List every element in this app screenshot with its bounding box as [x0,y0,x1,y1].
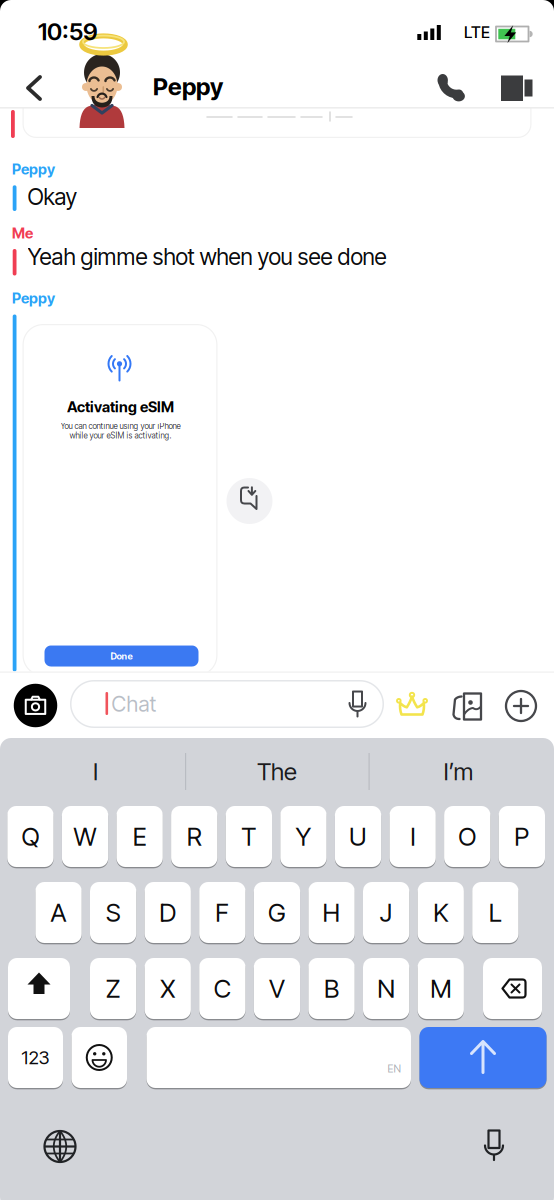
staticText: EN [387,1062,401,1075]
button[interactable]: Q [7,806,54,867]
staticText: Yeah gimme shot when you see done [27,243,386,270]
staticText: Okay [27,183,77,210]
button[interactable]: Video call [495,66,539,110]
staticText: Q [21,822,39,851]
staticText: V [269,974,285,1003]
button[interactable]: I [389,806,436,867]
staticText: G [268,898,286,927]
button[interactable]: M [418,958,464,1019]
staticText: M [430,974,451,1003]
button[interactable]: Shift [8,958,70,1019]
button[interactable]: I’m [378,749,538,793]
staticText: 10:59 [38,17,98,46]
button[interactable]: T [226,806,272,867]
button[interactable]: Send [419,1027,546,1088]
staticText: D [159,898,176,927]
staticText: X [160,974,175,1003]
button[interactable]: Chat [70,680,384,728]
staticText: The [257,757,297,786]
button[interactable]: E [116,806,163,867]
button[interactable]: K [418,882,464,943]
button[interactable]: Z [90,958,136,1019]
button[interactable]: U [335,806,381,867]
button[interactable]: W [62,806,108,867]
button[interactable]: Stickers [448,686,488,726]
button[interactable]: F [199,882,245,943]
staticText: A [50,898,66,927]
button[interactable]: Back [14,66,54,110]
button[interactable]: S [90,882,136,943]
button[interactable]: Space [146,1027,411,1088]
staticText: B [324,974,339,1003]
staticText: while your eSIM is activating. [69,431,171,440]
button[interactable]: C [199,958,245,1019]
button[interactable]: Y [280,806,327,867]
button[interactable]: R [171,806,217,867]
staticText: Activating eSIM [67,398,174,416]
button[interactable]: V [254,958,300,1019]
button[interactable]: O [444,806,490,867]
button[interactable]: Done [44,645,198,666]
staticText: F [215,898,229,927]
button[interactable]: Next keyboard [41,1127,79,1165]
button[interactable]: 123 [8,1027,63,1088]
staticText: O [458,822,476,851]
staticText: K [433,898,448,927]
button[interactable]: P [499,806,545,867]
button[interactable]: X [145,958,191,1019]
staticText: E [133,822,147,851]
staticText: LTE [464,23,490,42]
staticText: L [489,898,502,927]
button[interactable]: Audio call [429,66,473,110]
staticText: Done [110,650,132,661]
button[interactable]: J [363,882,409,943]
staticText: C [214,974,231,1003]
button[interactable]: A [35,882,82,943]
staticText: 123 [21,1046,49,1068]
staticText: U [349,822,367,851]
staticText: Peppy [12,160,55,178]
button[interactable]: D [145,882,191,943]
button[interactable]: H [308,882,355,943]
staticText: Peppy [153,72,223,101]
staticText: H [322,898,340,927]
staticText: W [73,822,96,851]
staticText: R [187,822,202,851]
staticText: T [241,822,256,851]
staticText: Y [295,822,311,851]
button[interactable]: N [363,958,409,1019]
button[interactable]: Dictation [475,1127,513,1165]
button[interactable]: Delete [483,958,542,1019]
button[interactable]: L [472,882,518,943]
staticText: I [410,822,415,851]
button[interactable]: More [504,689,538,723]
staticText: N [377,974,395,1003]
staticText: J [380,898,393,927]
staticText: I’m [443,757,473,786]
staticText: I [93,757,98,786]
staticText: P [514,822,529,851]
button[interactable]: I [15,749,175,793]
button[interactable]: The [197,749,357,793]
button[interactable]: Emoji [71,1027,127,1088]
button[interactable]: Peppy profile [0,0,160,140]
staticText: Z [106,974,121,1003]
staticText: S [106,898,121,927]
button[interactable]: Bitmoji stickers [393,687,431,725]
staticText: You can continue using your iPhone [60,421,180,431]
staticText: Chat [111,691,156,717]
button[interactable]: Camera [14,684,57,727]
staticText: Me [12,224,33,242]
button[interactable]: G [254,882,300,943]
staticText: Peppy [12,289,55,307]
button[interactable]: B [308,958,355,1019]
button[interactable]: Save in Chat [226,478,272,524]
